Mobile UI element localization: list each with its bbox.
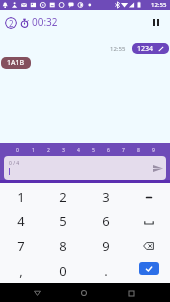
button[interactable]: Pause	[148, 14, 164, 30]
button[interactable]: 1	[0, 185, 42, 209]
staticText: 3	[62, 147, 65, 154]
staticText: 2	[47, 147, 50, 154]
staticText: 2	[9, 18, 14, 29]
button[interactable]: Recents	[123, 285, 139, 301]
button[interactable]: 6	[84, 209, 127, 233]
staticText: 8	[137, 147, 140, 154]
staticText: 1	[17, 188, 25, 206]
staticText: 0 / 4	[9, 160, 20, 167]
staticText: 8	[59, 237, 67, 255]
staticText: 12:55	[151, 1, 167, 9]
button[interactable]	[127, 185, 170, 209]
staticText: 1A1B	[7, 58, 25, 68]
button[interactable]: 7	[0, 233, 42, 258]
staticText: 12:55	[110, 45, 126, 53]
button[interactable]: 8	[42, 233, 84, 258]
staticText: 0	[59, 262, 67, 280]
staticText: 6	[107, 147, 110, 154]
staticText: 00:32	[32, 15, 58, 29]
staticText: 0	[16, 147, 19, 154]
button[interactable]: Send	[151, 161, 165, 175]
staticText: 1234	[137, 44, 154, 54]
staticText: 9	[152, 147, 155, 154]
button[interactable]: 5	[42, 209, 84, 233]
button[interactable]: 2	[42, 185, 84, 209]
staticText: 1	[32, 147, 35, 154]
staticText: 7	[17, 237, 25, 255]
staticText: 5	[59, 212, 67, 230]
button[interactable]: ,	[0, 258, 42, 283]
button[interactable]: Rounds	[5, 17, 17, 29]
button[interactable]: 0	[42, 258, 84, 283]
staticText: ,	[19, 262, 23, 280]
staticText: 5	[92, 147, 95, 154]
button[interactable]	[127, 209, 170, 233]
staticText: 9	[102, 237, 110, 255]
button[interactable]: 9	[84, 233, 127, 258]
staticText: 2	[59, 188, 67, 206]
staticText: 4	[77, 147, 80, 154]
button[interactable]	[127, 233, 170, 258]
staticText: 4	[17, 212, 25, 230]
staticText: .	[104, 262, 108, 280]
staticText: 6	[102, 212, 110, 230]
staticText: 3	[102, 188, 110, 206]
button[interactable]	[127, 258, 170, 283]
staticText: 7	[122, 147, 125, 154]
button[interactable]: 4	[0, 209, 42, 233]
button[interactable]: Home	[76, 285, 92, 301]
button[interactable]: .	[84, 258, 127, 283]
button[interactable]: 1234	[132, 43, 169, 54]
button[interactable]: 1A1B	[1, 57, 31, 69]
button[interactable]: 3	[84, 185, 127, 209]
button[interactable]: Back	[29, 285, 45, 301]
